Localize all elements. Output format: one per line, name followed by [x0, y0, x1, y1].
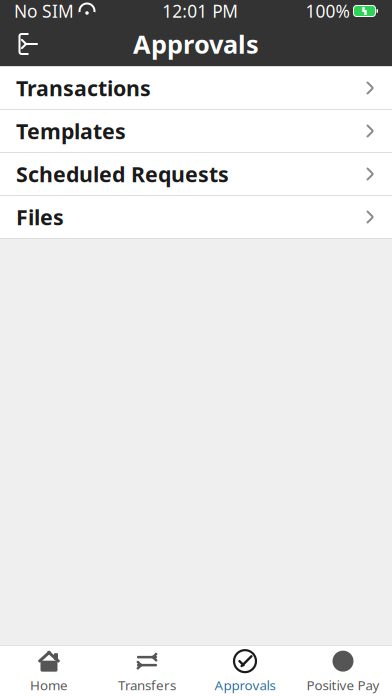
- button[interactable]: Scheduled Requests: [0, 153, 392, 195]
- staticText: Templates: [16, 117, 126, 145]
- button[interactable]: Positive Pay: [294, 646, 392, 696]
- button[interactable]: Files: [0, 196, 392, 238]
- button[interactable]: Approvals: [196, 646, 294, 696]
- button[interactable]: Home: [0, 646, 98, 696]
- staticText: Transactions: [16, 74, 151, 102]
- staticText: No SIM: [14, 0, 74, 22]
- button[interactable]: Transfers: [98, 646, 196, 696]
- button[interactable]: Sign out: [0, 22, 54, 66]
- staticText: Approvals: [133, 27, 259, 61]
- staticText: Files: [16, 203, 64, 231]
- staticText: Positive Pay: [306, 676, 379, 694]
- staticText: Transfers: [118, 676, 176, 694]
- button[interactable]: Templates: [0, 110, 392, 152]
- staticText: 12:01 PM: [162, 0, 238, 22]
- staticText: Home: [30, 676, 68, 694]
- staticText: 100%: [305, 0, 349, 22]
- button[interactable]: Transactions: [0, 67, 392, 109]
- staticText: Scheduled Requests: [16, 160, 229, 188]
- staticText: Approvals: [214, 676, 275, 694]
